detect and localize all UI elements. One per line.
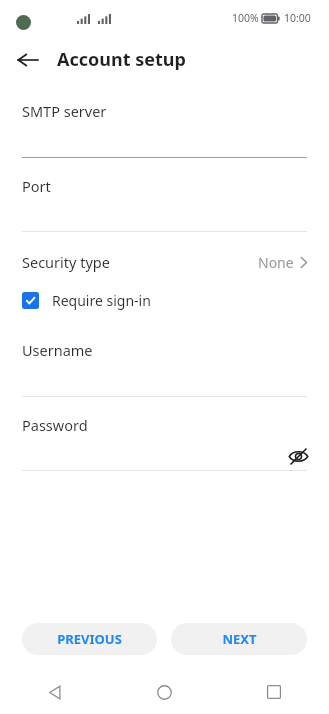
staticText: None [258, 253, 294, 272]
staticText: 100% [232, 11, 259, 25]
staticText: Username [22, 340, 93, 360]
button[interactable]: NEXT [171, 623, 307, 655]
staticText: Account setup [57, 47, 186, 72]
button[interactable]: PREVIOUS [22, 623, 157, 655]
button[interactable]: Port [0, 176, 329, 214]
button[interactable]: Home [109, 670, 219, 714]
button[interactable]: Require sign-in [0, 286, 159, 314]
button[interactable]: SMTP server [0, 101, 329, 139]
staticText: Port [22, 176, 51, 196]
button[interactable]: Password [0, 415, 329, 453]
button[interactable]: Security type [0, 248, 329, 276]
staticText: NEXT [222, 630, 257, 648]
button[interactable]: Back [0, 670, 109, 714]
button[interactable]: Back [14, 46, 42, 74]
staticText: Require sign-in [52, 291, 151, 310]
staticText: Password [22, 415, 88, 435]
button[interactable]: Username [0, 340, 329, 378]
staticText: Security type [22, 252, 110, 272]
staticText: 10:00 [284, 11, 311, 25]
button[interactable]: Show password [284, 442, 312, 470]
button[interactable]: Recent apps [219, 670, 329, 714]
staticText: SMTP server [22, 101, 107, 121]
staticText: PREVIOUS [57, 630, 122, 648]
